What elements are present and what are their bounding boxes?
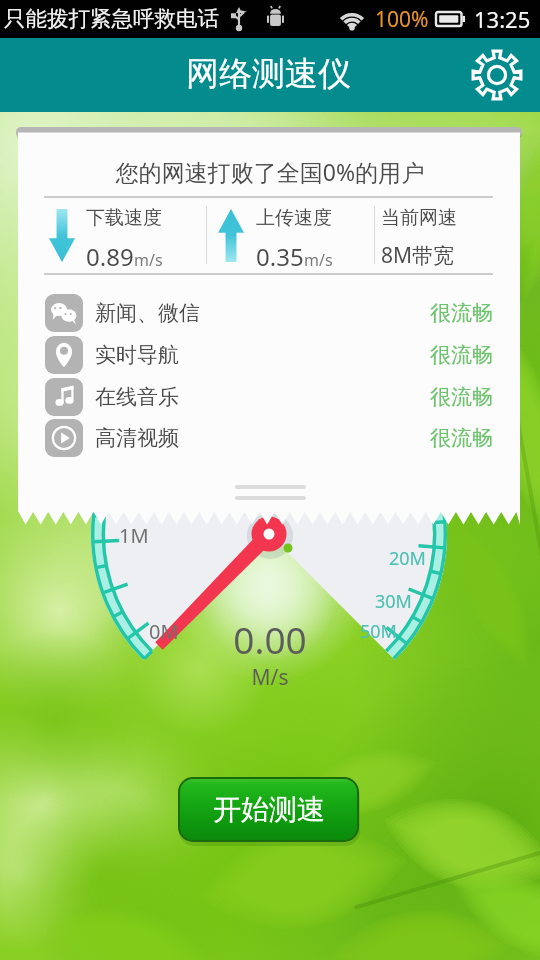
button[interactable]: 实时导航 — [0, 335, 540, 375]
staticText: 实时导航 — [95, 342, 179, 368]
staticText: 很流畅 — [430, 300, 493, 326]
staticText: 0M — [149, 618, 179, 645]
staticText: 当前网速 — [381, 206, 457, 230]
staticText: 20M — [389, 546, 426, 571]
staticText: 上传速度 — [256, 206, 332, 230]
staticText: m/s — [134, 249, 163, 271]
staticText: 30M — [375, 589, 412, 614]
staticText: 8M带宽 — [381, 241, 455, 270]
button[interactable]: 新闻、微信 — [0, 293, 540, 333]
staticText: 很流畅 — [430, 342, 493, 368]
staticText: 0.89 — [86, 240, 134, 273]
staticText: 很流畅 — [430, 384, 493, 410]
staticText: m/s — [304, 249, 333, 271]
staticText: 13:25 — [474, 4, 531, 34]
staticText: 开始测速 — [213, 792, 325, 827]
staticText: 网络测速仪 — [186, 53, 351, 95]
button[interactable]: 高清视频 — [0, 418, 540, 458]
staticText: M/s — [0, 663, 540, 692]
staticText: 1M — [119, 522, 149, 549]
staticText: 0.35 — [256, 240, 304, 273]
staticText: 在线音乐 — [95, 384, 179, 410]
button[interactable]: 开始测速 — [180, 779, 357, 840]
staticText: 下载速度 — [86, 206, 162, 230]
staticText: 0.00 — [0, 614, 540, 664]
button[interactable]: Settings — [465, 43, 529, 107]
staticText: 只能拨打紧急呼救电话 — [4, 5, 219, 32]
staticText: 很流畅 — [430, 425, 493, 451]
staticText: 新闻、微信 — [95, 300, 200, 326]
staticText: 100% — [375, 5, 429, 34]
staticText: 50M — [360, 619, 397, 644]
staticText: 高清视频 — [95, 425, 179, 451]
staticText: 您的网速打败了全国0%的用户 — [0, 156, 540, 187]
button[interactable]: 在线音乐 — [0, 377, 540, 417]
